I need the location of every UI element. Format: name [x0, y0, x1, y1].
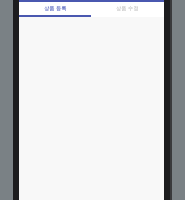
- staticText: 상품 등록: [44, 5, 67, 12]
- staticText: 상품 수정: [116, 5, 139, 12]
- button[interactable]: 상품 수정: [91, 2, 164, 15]
- button[interactable]: 상품 등록: [19, 2, 91, 15]
